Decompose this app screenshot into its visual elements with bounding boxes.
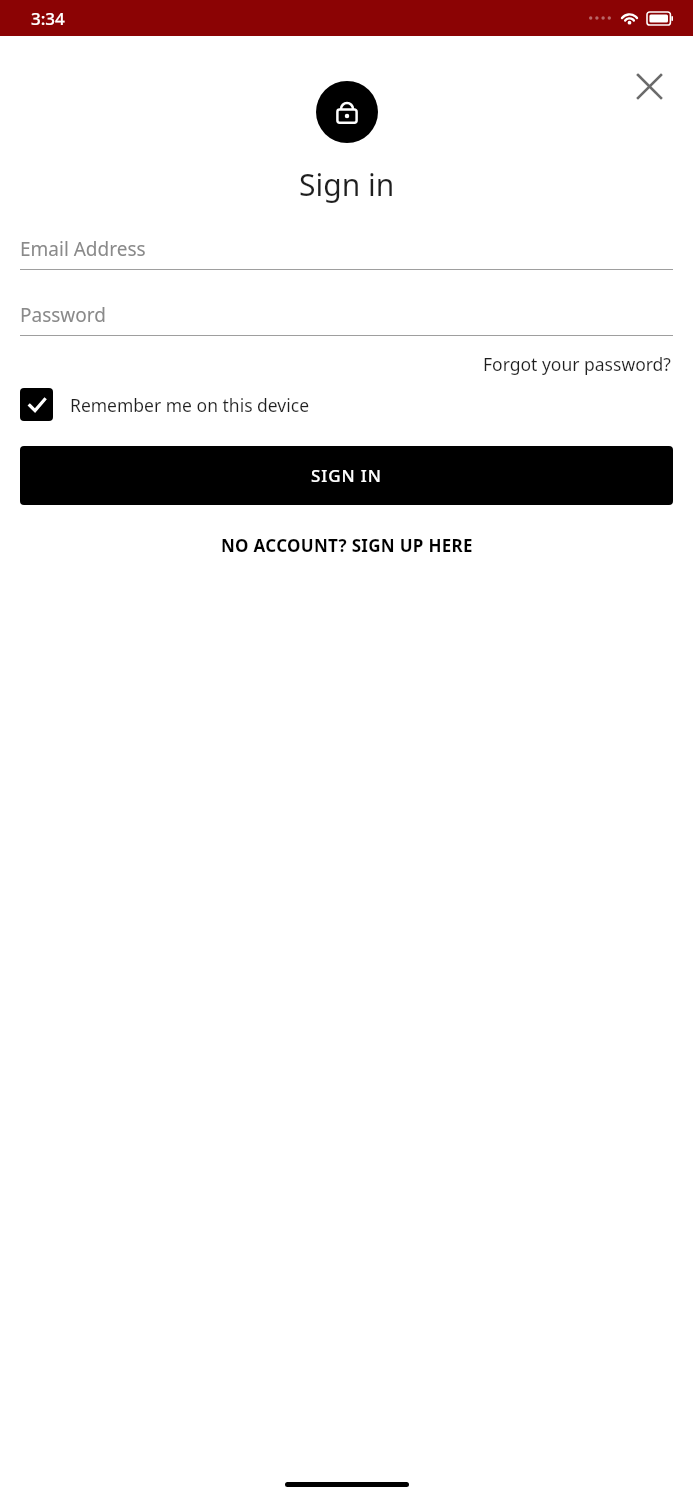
button[interactable]: Close xyxy=(627,64,671,108)
button[interactable]: Email Address xyxy=(20,229,673,270)
staticText: NO ACCOUNT? SIGN UP HERE xyxy=(221,534,473,557)
button[interactable]: SIGN IN xyxy=(20,446,673,505)
staticText: SIGN IN xyxy=(311,464,382,487)
staticText: Password xyxy=(20,302,106,328)
staticText: 3:34 xyxy=(31,7,65,30)
staticText: Sign in xyxy=(299,164,395,205)
staticText: Forgot your password? xyxy=(483,352,671,376)
button[interactable]: NO ACCOUNT? SIGN UP HERE xyxy=(213,529,481,562)
staticText: Email Address xyxy=(20,236,146,262)
button[interactable]: Password xyxy=(20,295,673,336)
staticText: Remember me on this device xyxy=(70,393,310,417)
button[interactable]: Forgot your password? xyxy=(481,349,673,379)
button[interactable]: Remember me on this device xyxy=(20,388,310,421)
